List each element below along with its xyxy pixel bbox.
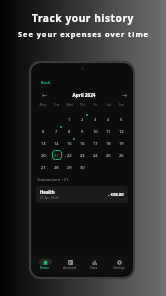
staticText: 6 bbox=[42, 129, 45, 134]
staticText: 20 bbox=[41, 153, 46, 158]
staticText: Fri bbox=[89, 103, 102, 107]
button[interactable]: 4 bbox=[102, 113, 115, 125]
staticText: 25 bbox=[106, 153, 111, 158]
staticText: 2 bbox=[81, 117, 84, 122]
button[interactable]: 3 bbox=[89, 113, 102, 125]
button[interactable]: 2 bbox=[76, 113, 89, 125]
staticText: See your expenses over time bbox=[18, 29, 149, 39]
staticText: 3 bbox=[94, 117, 97, 122]
button[interactable]: 17 bbox=[89, 137, 102, 149]
staticText: Sat bbox=[102, 103, 115, 107]
staticText: 22 bbox=[67, 153, 72, 158]
button[interactable]: 15 bbox=[63, 137, 76, 149]
button[interactable]: 19 bbox=[115, 137, 128, 149]
staticText: Sun bbox=[115, 103, 128, 107]
staticText: 9 bbox=[81, 129, 84, 134]
button[interactable]: Next month bbox=[120, 91, 128, 99]
staticText: 7 bbox=[55, 129, 58, 134]
staticText: 24 bbox=[93, 153, 98, 158]
button[interactable]: 10 bbox=[89, 125, 102, 137]
staticText: 23 bbox=[80, 153, 85, 158]
button[interactable]: 29 bbox=[63, 161, 76, 173]
button[interactable]: 6 bbox=[36, 125, 50, 137]
button[interactable]: 22 bbox=[63, 149, 76, 161]
button[interactable]: 14 bbox=[50, 137, 63, 149]
staticText: April 2024 bbox=[48, 92, 120, 98]
button[interactable]: Previous month bbox=[40, 91, 48, 99]
button[interactable]: 16 bbox=[76, 137, 89, 149]
button[interactable]: 18 bbox=[102, 137, 115, 149]
button[interactable]: 27 bbox=[36, 161, 50, 173]
button[interactable]: 25 bbox=[102, 149, 115, 161]
button[interactable]: 8 bbox=[63, 125, 76, 137]
staticText: Home bbox=[40, 266, 50, 270]
button[interactable]: 26 bbox=[115, 149, 128, 161]
button[interactable]: 7 bbox=[50, 125, 63, 137]
staticText: 11 bbox=[106, 129, 111, 134]
staticText: Mon bbox=[36, 103, 50, 107]
button[interactable]: Back bbox=[31, 75, 51, 87]
staticText: 19 bbox=[119, 141, 124, 146]
staticText: - €38.00 bbox=[108, 192, 124, 198]
button[interactable]: 20 bbox=[36, 149, 50, 161]
staticText: Settings bbox=[113, 266, 125, 270]
staticText: Track your history bbox=[32, 11, 134, 25]
staticText: 17 bbox=[93, 141, 98, 146]
staticText: 15 bbox=[67, 141, 72, 146]
staticText: 8 bbox=[68, 129, 71, 134]
button[interactable]: 9 bbox=[76, 125, 89, 137]
staticText: Health bbox=[40, 189, 55, 195]
staticText: Wed bbox=[63, 103, 76, 107]
staticText: 18 bbox=[106, 141, 111, 146]
staticText: Back bbox=[41, 80, 51, 85]
button[interactable]: Home bbox=[34, 259, 56, 270]
button[interactable]: 28 bbox=[50, 161, 63, 173]
button[interactable]: 12 bbox=[115, 125, 128, 137]
button[interactable]: 1 bbox=[63, 113, 76, 125]
button[interactable]: Settings bbox=[108, 259, 130, 270]
staticText: Thu bbox=[76, 103, 89, 107]
button[interactable]: 13 bbox=[36, 137, 50, 149]
staticText: 29 bbox=[67, 165, 72, 170]
staticText: 16 bbox=[80, 141, 85, 146]
button[interactable]: 5 bbox=[115, 113, 128, 125]
staticText: Transactions • 21 bbox=[37, 177, 69, 182]
button[interactable]: 23 bbox=[76, 149, 89, 161]
button[interactable]: Accounts bbox=[59, 259, 81, 270]
button[interactable]: Health bbox=[36, 186, 128, 203]
button[interactable]: 21 bbox=[50, 149, 63, 161]
staticText: 14 bbox=[54, 141, 59, 146]
staticText: 10 bbox=[93, 129, 98, 134]
button[interactable]: 11 bbox=[102, 125, 115, 137]
staticText: 4 bbox=[107, 117, 110, 122]
button[interactable]: 24 bbox=[89, 149, 102, 161]
staticText: 27 bbox=[41, 165, 46, 170]
staticText: 30 bbox=[80, 165, 85, 170]
staticText: 28 bbox=[54, 165, 59, 170]
button[interactable]: 30 bbox=[76, 161, 89, 173]
staticText: 12 bbox=[119, 129, 124, 134]
staticText: 21 bbox=[54, 153, 59, 158]
staticText: 21 Apr, 09:30 bbox=[40, 196, 60, 200]
staticText: Accounts bbox=[63, 266, 77, 270]
staticText: 1 bbox=[68, 117, 71, 122]
staticText: 26 bbox=[119, 153, 124, 158]
staticText: Stats bbox=[90, 266, 98, 270]
staticText: 5 bbox=[120, 117, 123, 122]
staticText: Tue bbox=[50, 103, 63, 107]
button[interactable]: Stats bbox=[83, 259, 105, 270]
staticText: 13 bbox=[41, 141, 46, 146]
